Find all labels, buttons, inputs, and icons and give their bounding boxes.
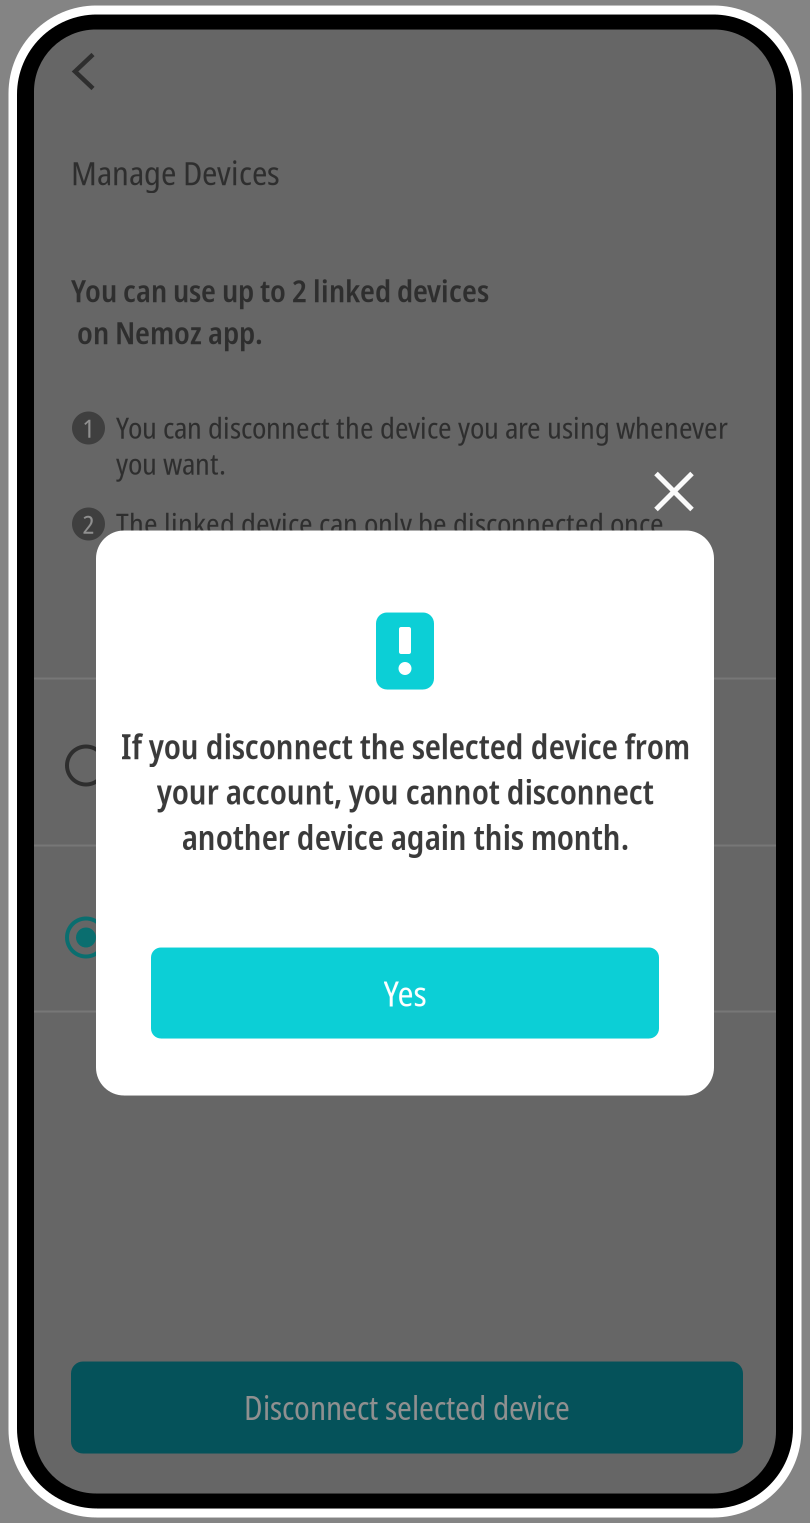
button[interactable]: Select device 1 bbox=[41, 705, 131, 825]
staticText: You can disconnect the device you are us… bbox=[116, 407, 728, 447]
button[interactable]: Yes bbox=[151, 947, 659, 1038]
staticText: If you disconnect the selected device fr… bbox=[120, 723, 689, 860]
staticText: You can use up to 2 linked devices bbox=[71, 269, 489, 311]
button[interactable]: Back bbox=[41, 38, 105, 102]
button[interactable]: Disconnect selected device bbox=[71, 1361, 743, 1453]
staticText: on Nemoz app. bbox=[71, 311, 263, 353]
staticText: 1 bbox=[82, 411, 94, 445]
staticText: Yes bbox=[383, 969, 426, 1017]
staticText: The linked device can only be disconnect… bbox=[116, 503, 664, 543]
button[interactable]: Select device 2, selected bbox=[41, 877, 131, 997]
staticText: 2 bbox=[82, 507, 94, 541]
staticText: you want. bbox=[116, 443, 226, 483]
button[interactable]: Close bbox=[635, 454, 711, 530]
staticText: Disconnect selected device bbox=[244, 1386, 570, 1429]
staticText: Manage Devices bbox=[71, 149, 280, 195]
